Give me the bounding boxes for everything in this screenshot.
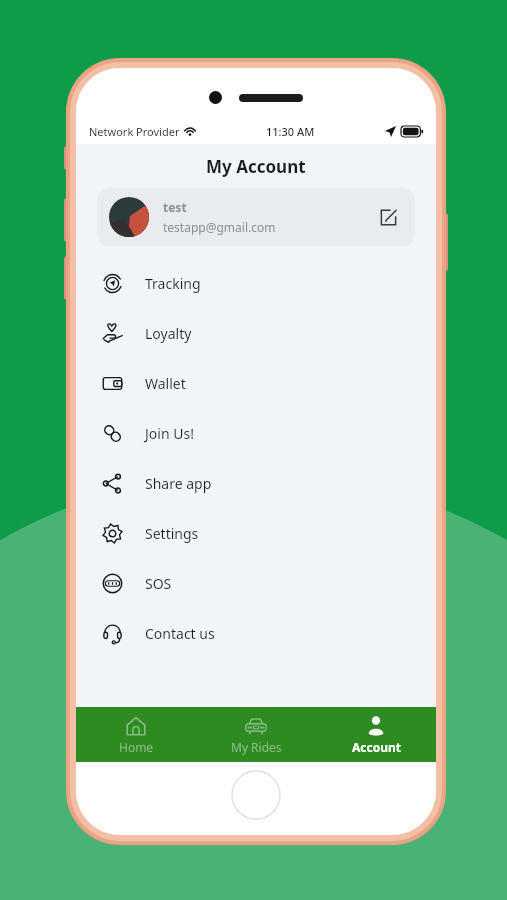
staticText: Wallet — [145, 374, 186, 393]
button[interactable]: Loyalty — [76, 308, 436, 358]
button[interactable]: My Rides — [196, 707, 316, 762]
button[interactable]: Wallet — [76, 358, 436, 408]
staticText: My Account — [206, 155, 306, 178]
staticText: Loyalty — [145, 324, 192, 343]
staticText: Contact us — [145, 624, 215, 643]
staticText: Tracking — [145, 274, 201, 293]
staticText: Network Provider — [89, 124, 180, 139]
staticText: test — [163, 199, 187, 215]
button[interactable]: Share app — [76, 458, 436, 508]
button[interactable]: test — [97, 188, 415, 246]
staticText: Join Us! — [145, 424, 194, 443]
staticText: Settings — [145, 524, 199, 543]
button[interactable]: Home — [76, 707, 196, 762]
button[interactable]: SOS — [76, 558, 436, 608]
button[interactable]: Edit profile — [373, 202, 403, 232]
button[interactable]: Account — [316, 707, 436, 762]
button[interactable]: Tracking — [76, 258, 436, 308]
button[interactable]: Contact us — [76, 608, 436, 658]
staticText: Account — [352, 739, 401, 755]
button[interactable]: Join Us! — [76, 408, 436, 458]
staticText: Home — [119, 739, 154, 755]
staticText: 11:30 AM — [266, 124, 315, 139]
staticText: Share app — [145, 474, 212, 493]
staticText: My Rides — [231, 739, 282, 755]
button[interactable]: Settings — [76, 508, 436, 558]
staticText: testapp@gmail.com — [163, 219, 276, 235]
staticText: SOS — [145, 574, 172, 593]
